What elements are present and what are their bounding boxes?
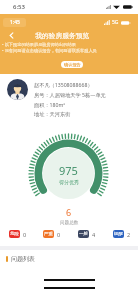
staticText: 一般	[79, 231, 88, 237]
staticText: 赵不凡（13508088668）	[34, 81, 93, 88]
button[interactable]: 严重	[43, 230, 61, 238]
staticText: 2	[127, 231, 131, 238]
staticText: 得分优秀	[59, 179, 79, 185]
staticText: 确认报告	[64, 62, 81, 67]
button[interactable]: 提醒	[113, 230, 131, 238]
staticText: 6	[66, 206, 72, 218]
staticText: 面积：180m²	[34, 101, 66, 108]
staticText: 0	[57, 231, 61, 238]
staticText: 严重	[44, 231, 53, 237]
staticText: 问题总数	[60, 220, 79, 226]
staticText: 0	[23, 231, 27, 238]
staticText: 5G	[112, 19, 119, 26]
staticText: 提醒	[114, 231, 123, 237]
staticText: • 以下预定的结果就是验房师给出的结果	[2, 42, 76, 48]
staticText: 问题列表	[11, 255, 35, 263]
staticText: 地址：天河东街	[34, 111, 71, 118]
staticText: 1:45	[10, 19, 20, 26]
staticText: 危险	[10, 231, 19, 237]
button[interactable]: 危险	[9, 230, 27, 238]
staticText: 我的验房服务预览	[35, 31, 90, 40]
button[interactable]: 确认报告	[61, 61, 83, 68]
button[interactable]: 一般	[78, 230, 96, 238]
staticText: • 没有问题请点击确认报告，有问题请联系客服人员	[2, 48, 97, 54]
staticText: 6:53	[13, 3, 25, 11]
staticText: 975	[59, 163, 78, 178]
button[interactable]: Back	[4, 28, 18, 42]
staticText: 房号：人居锦地天学 5栋一单元	[34, 91, 106, 98]
staticText: 4	[92, 231, 96, 238]
